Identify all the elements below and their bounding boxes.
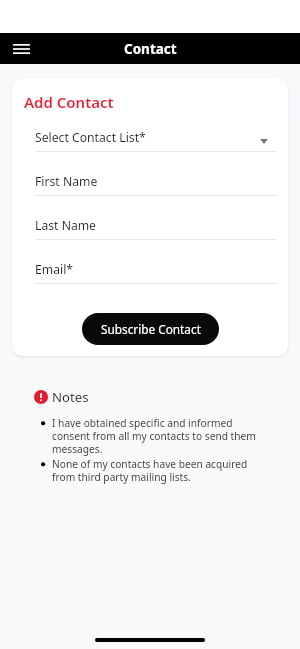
button[interactable]: First Name (35, 167, 277, 211)
staticText: I have obtained specific and informed co… (52, 416, 267, 456)
staticText: Notes (52, 388, 89, 406)
button[interactable]: Select Contact List* (35, 123, 277, 167)
button[interactable]: Last Name (35, 211, 277, 255)
staticText: Add Contact (24, 92, 114, 112)
button[interactable]: Subscribe Contact (82, 313, 219, 345)
staticText: Select Contact List* (35, 129, 146, 146)
button[interactable]: Email* (35, 255, 277, 299)
staticText: First Name (35, 173, 98, 190)
staticText: None of my contacts have been acquired f… (52, 457, 267, 484)
staticText: Last Name (35, 217, 96, 234)
staticText: Email* (35, 261, 74, 278)
button[interactable]: Open navigation menu (9, 37, 33, 61)
staticText: Subscribe Contact (101, 321, 201, 337)
staticText: Contact (124, 40, 177, 58)
